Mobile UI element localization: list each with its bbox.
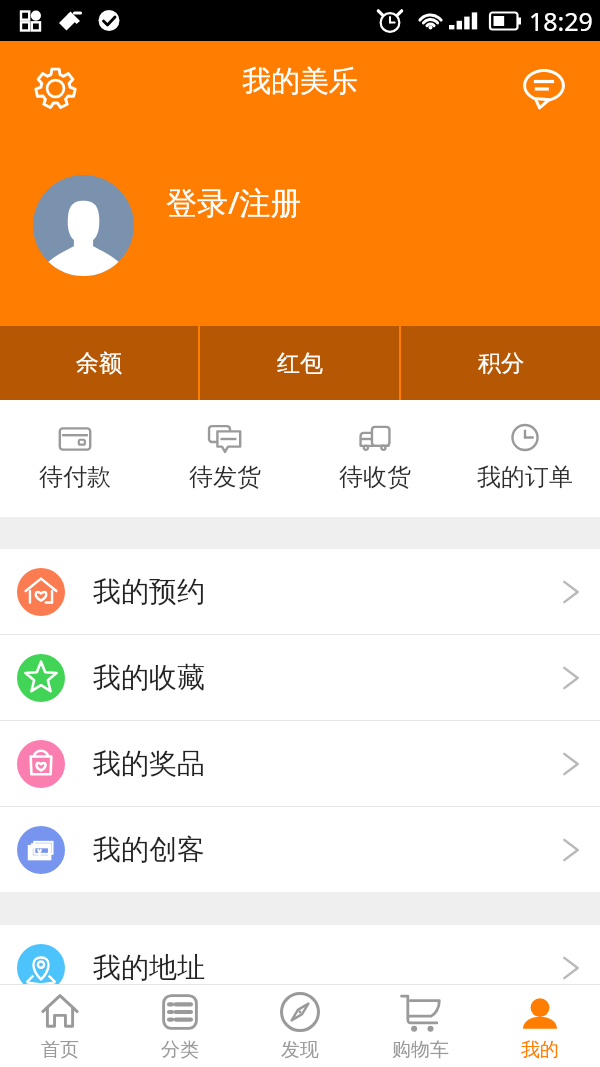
staticText: 首页 xyxy=(41,1038,79,1062)
staticText: 我的预约 xyxy=(93,574,205,609)
staticText: 分类 xyxy=(161,1038,199,1062)
button[interactable]: 首页 xyxy=(0,985,120,1067)
button[interactable]: 我的订单 xyxy=(450,400,600,517)
staticText: 我的创客 xyxy=(93,832,205,867)
staticText: 我的奖品 xyxy=(93,746,205,781)
button[interactable]: 余额 xyxy=(0,326,198,400)
button[interactable]: 我的消息 xyxy=(0,1011,600,1067)
button[interactable]: 待收货 xyxy=(300,400,450,517)
button[interactable]: 分类 xyxy=(120,985,240,1067)
staticText: 我的美乐 xyxy=(242,63,358,100)
button[interactable]: 登录/注册 xyxy=(33,175,302,276)
button[interactable]: 我的 xyxy=(480,985,600,1067)
staticText: 我的消息 xyxy=(93,1022,205,1057)
staticText: 登录/注册 xyxy=(166,181,302,223)
staticText: 我的订单 xyxy=(477,462,573,492)
button[interactable]: 我的奖品 xyxy=(0,721,600,806)
staticText: 我的地址 xyxy=(93,950,205,985)
staticText: 红包 xyxy=(277,349,323,378)
button[interactable]: Settings xyxy=(23,56,88,121)
staticText: 积分 xyxy=(478,349,524,378)
button[interactable]: Messages xyxy=(511,56,576,121)
button[interactable]: 待付款 xyxy=(0,400,150,517)
button[interactable]: 我的创客 xyxy=(0,807,600,892)
staticText: 待付款 xyxy=(39,462,111,492)
staticText: 我的 xyxy=(521,1038,559,1062)
staticText: 18:29 xyxy=(529,4,593,38)
staticText: 待收货 xyxy=(339,462,411,492)
button[interactable]: 积分 xyxy=(401,326,600,400)
button[interactable]: 发现 xyxy=(240,985,360,1067)
button[interactable]: 待发货 xyxy=(150,400,300,517)
button[interactable]: 购物车 xyxy=(360,985,480,1067)
staticText: 余额 xyxy=(76,349,122,378)
button[interactable]: 红包 xyxy=(200,326,399,400)
staticText: 发现 xyxy=(281,1038,319,1062)
button[interactable]: 我的预约 xyxy=(0,549,600,634)
button[interactable]: 我的地址 xyxy=(0,925,600,1010)
staticText: 我的收藏 xyxy=(93,660,205,695)
button[interactable]: 我的收藏 xyxy=(0,635,600,720)
staticText: 购物车 xyxy=(392,1038,449,1062)
staticText: 待发货 xyxy=(189,462,261,492)
